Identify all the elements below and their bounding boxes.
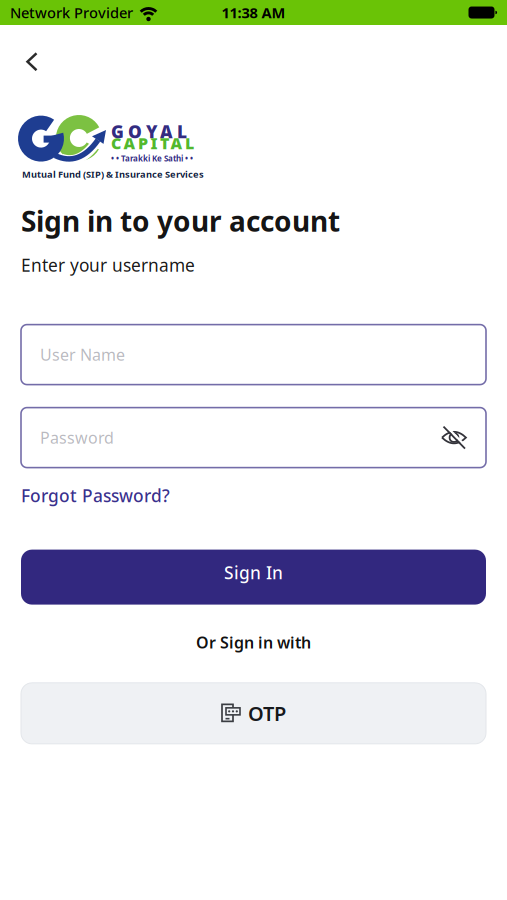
button[interactable]: Back	[26, 52, 38, 72]
staticText: CAPITAL	[111, 132, 194, 154]
staticText: GOYAL	[111, 120, 187, 143]
staticText: Enter your username	[21, 254, 195, 277]
button[interactable]: Sign In	[21, 550, 486, 605]
staticText: Network Provider	[10, 3, 133, 22]
staticText: OTP	[248, 700, 286, 727]
staticText: 11:38 AM	[221, 3, 285, 22]
staticText: Sign in to your account	[21, 202, 340, 240]
staticText: Mutual Fund (SIP) & Insurance Services	[22, 168, 204, 180]
staticText: Or Sign in with	[196, 632, 311, 653]
staticText: • • Tarakki Ke Sathi • •	[111, 153, 193, 164]
button[interactable]: Show password	[441, 425, 486, 450]
staticText: Forgot Password?	[21, 484, 170, 507]
staticText: User Name	[40, 344, 125, 365]
staticText: Password	[40, 427, 114, 448]
button[interactable]: OTP	[21, 683, 486, 744]
button[interactable]: Forgot Password?	[21, 484, 170, 507]
staticText: Sign In	[224, 561, 283, 584]
